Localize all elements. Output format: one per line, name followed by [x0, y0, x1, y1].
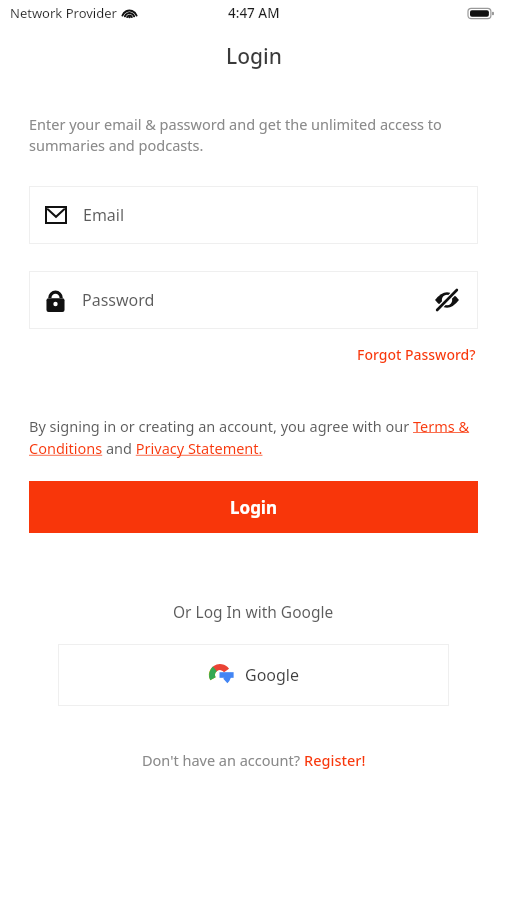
staticText: Email: [83, 204, 125, 226]
staticText: Forgot Password?: [357, 345, 476, 364]
staticText: Login: [230, 496, 278, 519]
staticText: By signing in or creating an account, yo…: [29, 416, 478, 458]
button[interactable]: Don't have an account?: [142, 750, 366, 770]
staticText: Or Log In with Google: [173, 601, 334, 622]
button[interactable]: Forgot Password?: [355, 342, 478, 367]
staticText: Enter your email & password and get the …: [29, 114, 478, 156]
staticText: Password: [82, 289, 155, 311]
button[interactable]: Google: [58, 644, 449, 706]
button[interactable]: By signing in or creating an account, yo…: [29, 416, 478, 458]
staticText: 4:47 AM: [228, 4, 280, 22]
button[interactable]: Login: [29, 481, 478, 533]
button[interactable]: Email: [29, 186, 478, 244]
staticText: Register!: [304, 750, 366, 770]
staticText: Network Provider: [10, 4, 117, 22]
staticText: Login: [226, 42, 282, 71]
button[interactable]: Show password: [432, 285, 462, 315]
staticText: Don't have an account?: [142, 750, 304, 770]
button[interactable]: Password: [29, 271, 478, 329]
staticText: Google: [245, 664, 300, 686]
